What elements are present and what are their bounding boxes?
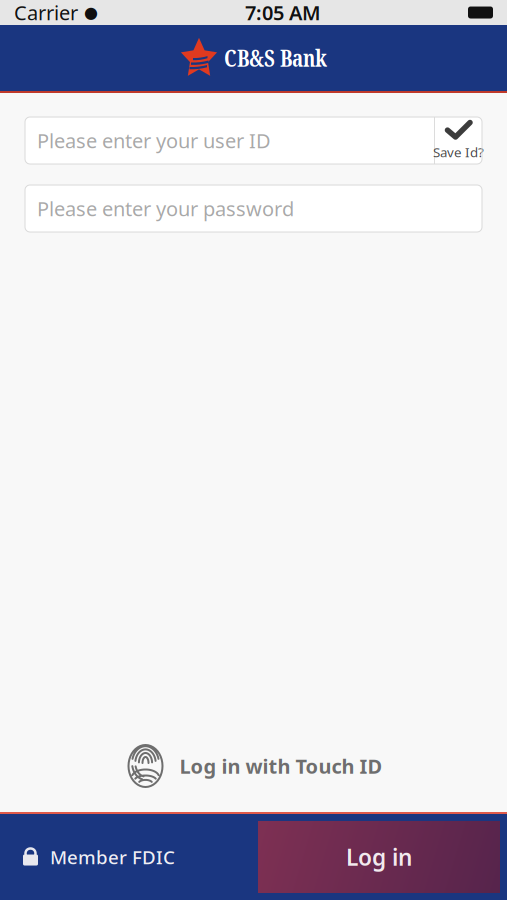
button[interactable]: Member FDIC (0, 845, 175, 869)
button[interactable]: Save Id (435, 117, 482, 164)
staticText: CB&S Bank (224, 43, 327, 73)
button[interactable]: Log in (258, 821, 500, 893)
staticText: Carrier (14, 0, 78, 26)
staticText: 7:05 AM (245, 0, 321, 26)
staticText: Save Id? (433, 143, 484, 161)
staticText: Please enter your password (37, 195, 294, 222)
staticText: Member FDIC (50, 845, 175, 869)
staticText: Log in (346, 842, 412, 872)
button[interactable]: Log in with Touch ID (124, 742, 382, 790)
staticText: Please enter your user ID (37, 127, 271, 154)
staticText: Log in with Touch ID (179, 753, 382, 779)
staticText: ● (84, 3, 98, 22)
